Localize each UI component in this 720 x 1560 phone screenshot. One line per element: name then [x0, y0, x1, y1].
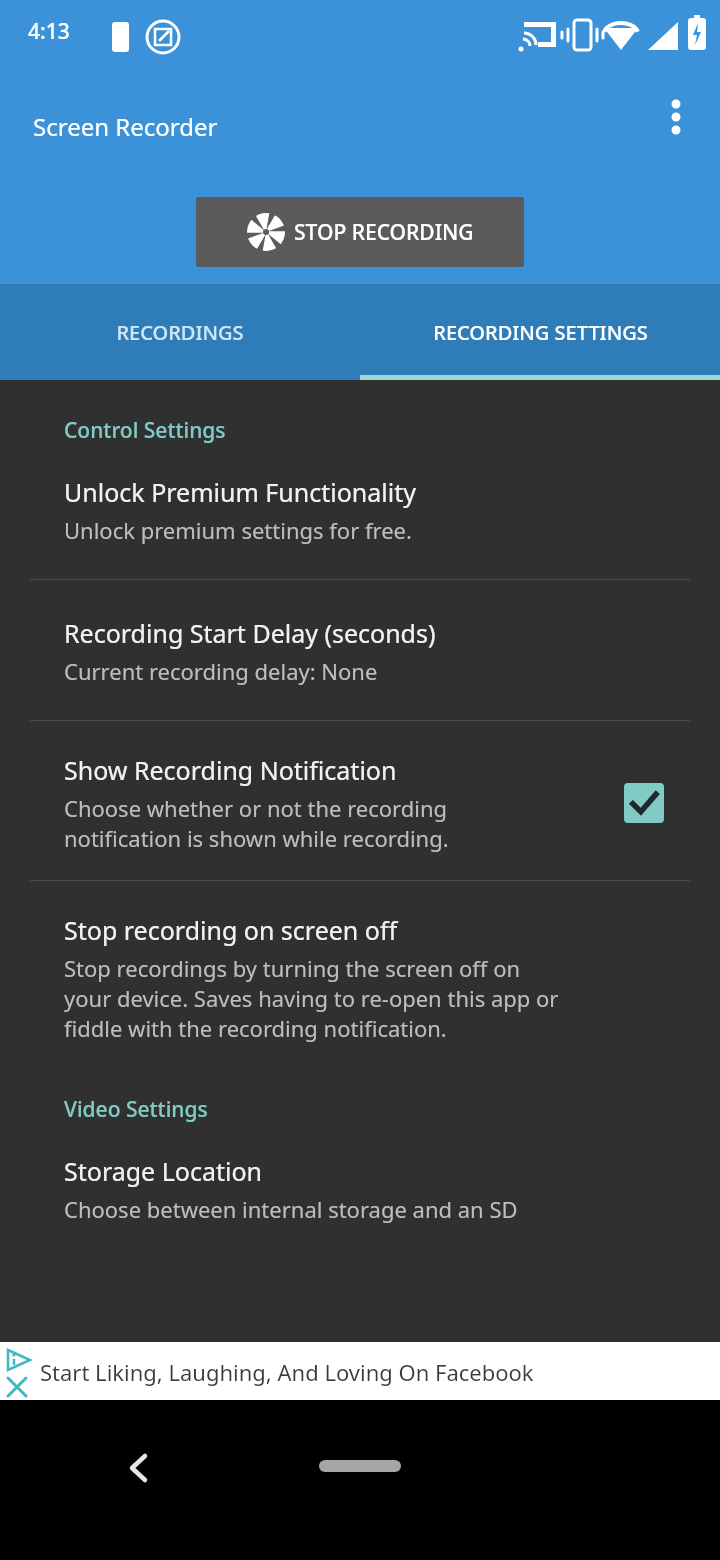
button[interactable]: STOP RECORDING	[196, 197, 524, 267]
staticText: Control Settings	[64, 416, 226, 445]
staticText: Recording Start Delay (seconds)	[64, 616, 436, 650]
button[interactable]: Ad choices	[0, 1342, 720, 1400]
button[interactable]: Stop recording on screen off	[0, 913, 720, 1043]
staticText: Stop recording on screen off	[64, 913, 398, 947]
button[interactable]: Back	[110, 1440, 166, 1496]
button[interactable]: RECORDING SETTINGS	[360, 284, 720, 380]
button[interactable]: RECORDINGS	[0, 284, 360, 380]
staticText: Show Recording Notification	[64, 753, 397, 787]
staticText: 4:13	[28, 17, 70, 46]
staticText: your device. Saves having to re-open thi…	[64, 983, 559, 1013]
button[interactable]: Recording Start Delay (seconds)	[0, 616, 720, 686]
staticText: Start Liking, Laughing, And Loving On Fa…	[40, 1357, 534, 1387]
staticText: RECORDINGS	[116, 319, 244, 346]
button[interactable]: More options	[652, 92, 700, 140]
staticText: Storage Location	[64, 1154, 263, 1188]
staticText: Stop recordings by turning the screen of…	[64, 953, 521, 983]
button[interactable]: Unlock Premium Functionality	[0, 475, 720, 545]
button[interactable]: Show Recording Notification	[0, 753, 720, 853]
button[interactable]: Show Recording Notification toggle	[622, 781, 666, 825]
button[interactable]: Storage Location	[0, 1154, 720, 1224]
staticText: Screen Recorder	[33, 110, 218, 143]
staticText: notification is shown while recording.	[64, 823, 449, 853]
staticText: Unlock premium settings for free.	[64, 515, 412, 545]
staticText: RECORDING SETTINGS	[433, 319, 648, 346]
staticText: fiddle with the recording notification.	[64, 1013, 447, 1043]
staticText: Current recording delay: None	[64, 656, 378, 686]
staticText: Unlock Premium Functionality	[64, 475, 416, 509]
staticText: Choose whether or not the recording	[64, 793, 448, 823]
staticText: Video Settings	[64, 1095, 208, 1124]
staticText: STOP RECORDING	[294, 218, 474, 247]
other: Ad choices	[4, 1348, 34, 1394]
button[interactable]: Home	[319, 1460, 401, 1472]
staticText: Choose between internal storage and an S…	[64, 1194, 518, 1224]
